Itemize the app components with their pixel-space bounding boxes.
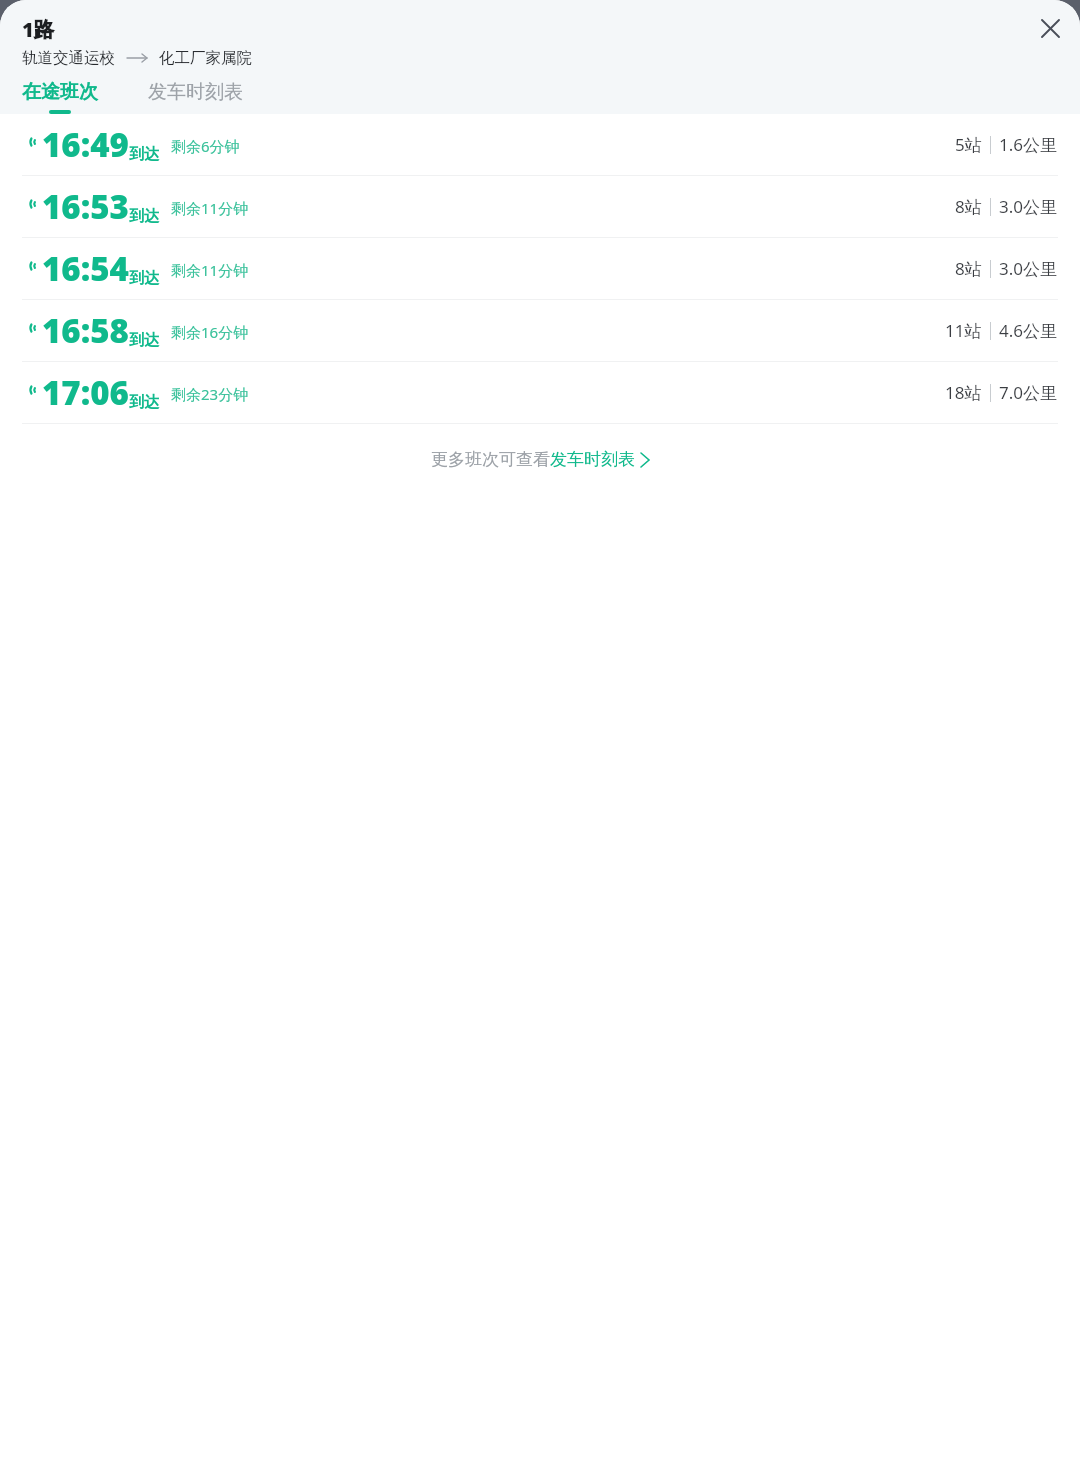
staticText: 到达	[129, 331, 159, 350]
staticText: 16:58	[42, 308, 129, 353]
staticText: 8站	[955, 257, 982, 280]
button[interactable]: 发车时刻表	[144, 80, 247, 116]
staticText: 7.0公里	[999, 381, 1058, 404]
staticText: 剩余23分钟	[171, 384, 249, 404]
button[interactable]: 16:49	[0, 114, 1080, 175]
staticText: 4.6公里	[999, 319, 1058, 342]
staticText: 剩余6分钟	[171, 136, 240, 156]
button[interactable]: 17:06	[0, 362, 1080, 423]
staticText: 到达	[129, 145, 159, 164]
button[interactable]: 在途班次	[0, 80, 120, 116]
staticText: 在途班次	[22, 80, 98, 104]
button[interactable]: 16:58	[0, 300, 1080, 361]
staticText: 剩余11分钟	[171, 198, 249, 218]
staticText: 16:53	[42, 184, 129, 229]
staticText: 11站	[945, 319, 982, 342]
staticText: 1.6公里	[999, 133, 1058, 156]
staticText: 16:54	[42, 246, 129, 291]
staticText: 到达	[129, 269, 159, 288]
staticText: 18站	[945, 381, 982, 404]
button[interactable]: Close	[1028, 6, 1072, 50]
staticText: 1路	[22, 16, 54, 43]
staticText: 剩余16分钟	[171, 322, 249, 342]
staticText: 5站	[955, 133, 982, 156]
staticText: 3.0公里	[999, 257, 1058, 280]
staticText: 发车时刻表	[148, 80, 243, 104]
staticText: 3.0公里	[999, 195, 1058, 218]
staticText: 化工厂家属院	[159, 48, 252, 68]
staticText: 到达	[129, 207, 159, 226]
staticText: 16:49	[42, 122, 129, 167]
staticText: 剩余11分钟	[171, 260, 249, 280]
staticText: 更多班次可查看	[431, 449, 550, 470]
staticText: 17:06	[42, 370, 129, 415]
staticText: 8站	[955, 195, 982, 218]
staticText: 轨道交通运校	[22, 48, 115, 68]
button[interactable]: 16:54	[0, 238, 1080, 299]
staticText: 到达	[129, 393, 159, 412]
button[interactable]: 更多班次可查看	[0, 449, 1080, 470]
staticText: 发车时刻表	[550, 449, 635, 470]
button[interactable]: 16:53	[0, 176, 1080, 237]
